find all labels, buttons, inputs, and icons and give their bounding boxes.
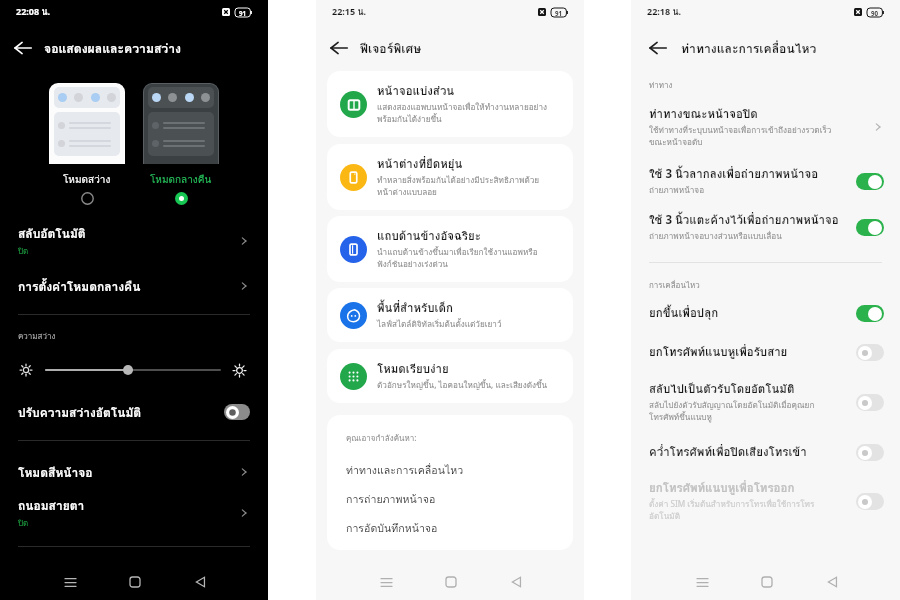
staticText: สลับอัตโนมัติ — [18, 224, 86, 243]
staticText: จอแสดงผลและความสว่าง — [44, 39, 181, 58]
button[interactable]: Toggle off — [856, 394, 884, 411]
button[interactable]: โหมดเรียบง่าย — [327, 349, 573, 403]
button[interactable]: ยกขึ้นเพื่อปลุก — [631, 300, 900, 326]
staticText: โหมดเรียบง่าย — [377, 360, 449, 378]
staticText: การถ่ายภาพหน้าจอ — [346, 491, 436, 508]
staticText: ยกขึ้นเพื่อปลุก — [649, 304, 719, 322]
button[interactable]: พื้นที่สำหรับเด็ก — [327, 288, 573, 342]
other: Back — [14, 39, 32, 57]
button[interactable]: Toggle off — [856, 344, 884, 361]
staticText: คุณเอาจกำลังค้นหา: — [346, 432, 417, 445]
button[interactable]: หน้าต่างที่ยืดหยุ่น — [327, 144, 573, 210]
button[interactable]: Toggle off — [856, 444, 884, 461]
button[interactable]: สลับไปเป็นตัวรับโดยอัตโนมัติ — [631, 379, 900, 425]
button[interactable]: สลับอัตโนมัติ — [0, 222, 268, 260]
staticText: ท่าทางและการเคลื่อนไหว — [346, 462, 464, 479]
staticText: คว่ำโทรศัพท์เพื่อปิดเสียงโทรเข้า — [649, 443, 807, 461]
button[interactable]: คว่ำโทรศัพท์เพื่อปิดเสียงโทรเข้า — [631, 439, 900, 465]
staticText: ตั้งค่า SIM เริ่มต้นสำหรับการโทรเพื่อใช้… — [649, 498, 825, 523]
staticText: ใช้ 3 นิ้วแตะค้างไว้เพื่อถ่ายภาพหน้าจอ — [649, 211, 839, 229]
button[interactable]: Home — [120, 564, 150, 600]
staticText: การเคลื่อนไหว — [649, 279, 700, 292]
staticText: สลับไปเป็นตัวรับโดยอัตโนมัติ — [649, 380, 795, 398]
staticText: ไลฟ์สไตล์ดิจิทัลเริ่มต้นตั้งแต่วัยเยาว์ — [377, 318, 502, 331]
other: Back — [649, 39, 667, 57]
staticText: ยกโทรศัพท์แนบหูเพื่อรับสาย — [649, 343, 788, 361]
button[interactable]: Back — [631, 34, 900, 62]
staticText: 22:08 น. — [16, 5, 51, 19]
button[interactable]: Home — [436, 564, 466, 600]
staticText: ตัวอักษรใหญ่ขึ้น, ไอคอนใหญ่ขึ้น, และเสีย… — [377, 379, 548, 392]
staticText: การตั้งค่าโหมดกลางคืน — [18, 277, 141, 296]
staticText: 22:18 น. — [647, 5, 682, 19]
button[interactable]: Toggle on — [856, 173, 884, 190]
staticText: หน้าต่างที่ยืดหยุ่น — [377, 155, 463, 173]
button[interactable]: Back — [817, 564, 847, 600]
staticText: ความสว่าง — [18, 330, 56, 343]
staticText: ท่าทาง — [649, 79, 673, 92]
button[interactable]: โหมดสีหน้าจอ — [0, 456, 268, 488]
staticText: สลับไปยังตัวรับสัญญาณโดยอัตโนมัติเมื่อคุ… — [649, 399, 825, 424]
button[interactable]: Toggle on — [856, 219, 884, 236]
staticText: ทำหลายสิ่งพร้อมกันได้อย่างมีประสิทธิภาพด… — [377, 174, 559, 199]
button[interactable]: ท่าทางและการเคลื่อนไหว — [346, 462, 573, 491]
button[interactable]: Back — [0, 34, 268, 62]
button[interactable]: ท่าทางขณะหน้าจอปิด — [631, 104, 900, 150]
staticText: โหมดสว่าง — [63, 172, 111, 188]
button[interactable]: ยกโทรศัพท์แนบหูเพื่อโทรออก — [631, 478, 900, 524]
staticText: ถ่ายภาพหน้าจอบางส่วนหรือแบบเลื่อน — [649, 230, 825, 243]
staticText: การอัดบันทึกหน้าจอ — [346, 520, 438, 537]
button[interactable]: การตั้งค่าโหมดกลางคืน — [0, 270, 268, 302]
staticText: แสดงสองแอพบนหน้าจอเพื่อให้ทำงานหลายอย่าง… — [377, 101, 559, 126]
staticText: พื้นที่สำหรับเด็ก — [377, 299, 453, 317]
button[interactable]: ถนอมสายตา — [0, 494, 268, 532]
staticText: ถนอมสายตา — [18, 496, 85, 515]
button[interactable]: โหมดกลางคืน — [143, 83, 219, 205]
button[interactable]: แถบด้านข้างอัจฉริยะ — [327, 216, 573, 282]
button[interactable]: ปรับความสว่างอัตโนมัติ — [0, 398, 268, 426]
staticText: ถ่ายภาพหน้าจอ — [649, 184, 825, 197]
other: Back — [330, 39, 348, 57]
button[interactable]: การอัดบันทึกหน้าจอ — [346, 520, 573, 540]
button[interactable]: Toggle off — [856, 493, 884, 510]
staticText: หน้าจอแบ่งส่วน — [377, 82, 455, 100]
button[interactable]: การถ่ายภาพหน้าจอ — [346, 491, 573, 520]
staticText: ท่าทางขณะหน้าจอปิด — [649, 105, 758, 123]
staticText: 91 — [555, 9, 563, 17]
button[interactable]: ใช้ 3 นิ้วลากลงเพื่อถ่ายภาพหน้าจอ — [631, 163, 900, 199]
staticText: ใช้ท่าทางที่ระบุบนหน้าจอเพื่อการเข้าถึงอ… — [649, 124, 849, 149]
button[interactable]: ยกโทรศัพท์แนบหูเพื่อรับสาย — [631, 339, 900, 365]
staticText: ท่าทางและการเคลื่อนไหว — [681, 39, 817, 58]
button[interactable]: Back — [185, 564, 215, 600]
button[interactable]: ใช้ 3 นิ้วแตะค้างไว้เพื่อถ่ายภาพหน้าจอ — [631, 209, 900, 245]
staticText: ปิด — [18, 245, 29, 258]
staticText: 22:15 น. — [332, 5, 367, 19]
staticText: โหมดกลางคืน — [150, 172, 212, 188]
button[interactable]: Recents — [687, 564, 717, 600]
staticText: แถบด้านข้างอัจฉริยะ — [377, 227, 481, 245]
button[interactable]: Back — [316, 34, 584, 62]
button[interactable]: Recents — [55, 564, 85, 600]
staticText: 91 — [239, 9, 247, 17]
button[interactable]: หน้าจอแบ่งส่วน — [327, 71, 573, 137]
staticText: โหมดสีหน้าจอ — [18, 463, 93, 482]
button[interactable]: โหมดสว่าง — [49, 83, 125, 205]
staticText: ปิด — [18, 517, 29, 530]
staticText: นำแถบด้านข้างขึ้นมาเพื่อเรียกใช้งานแอพหร… — [377, 246, 559, 271]
staticText: ปรับความสว่างอัตโนมัติ — [18, 403, 142, 422]
button[interactable]: Toggle on — [856, 305, 884, 322]
staticText: ใช้ 3 นิ้วลากลงเพื่อถ่ายภาพหน้าจอ — [649, 165, 819, 183]
button[interactable]: Home — [752, 564, 782, 600]
staticText: ฟีเจอร์พิเศษ — [360, 39, 422, 58]
staticText: ยกโทรศัพท์แนบหูเพื่อโทรออก — [649, 479, 795, 497]
staticText: 90 — [871, 9, 879, 17]
button[interactable]: Recents — [371, 564, 401, 600]
button[interactable]: Back — [501, 564, 531, 600]
button[interactable]: Toggle off — [224, 404, 250, 420]
